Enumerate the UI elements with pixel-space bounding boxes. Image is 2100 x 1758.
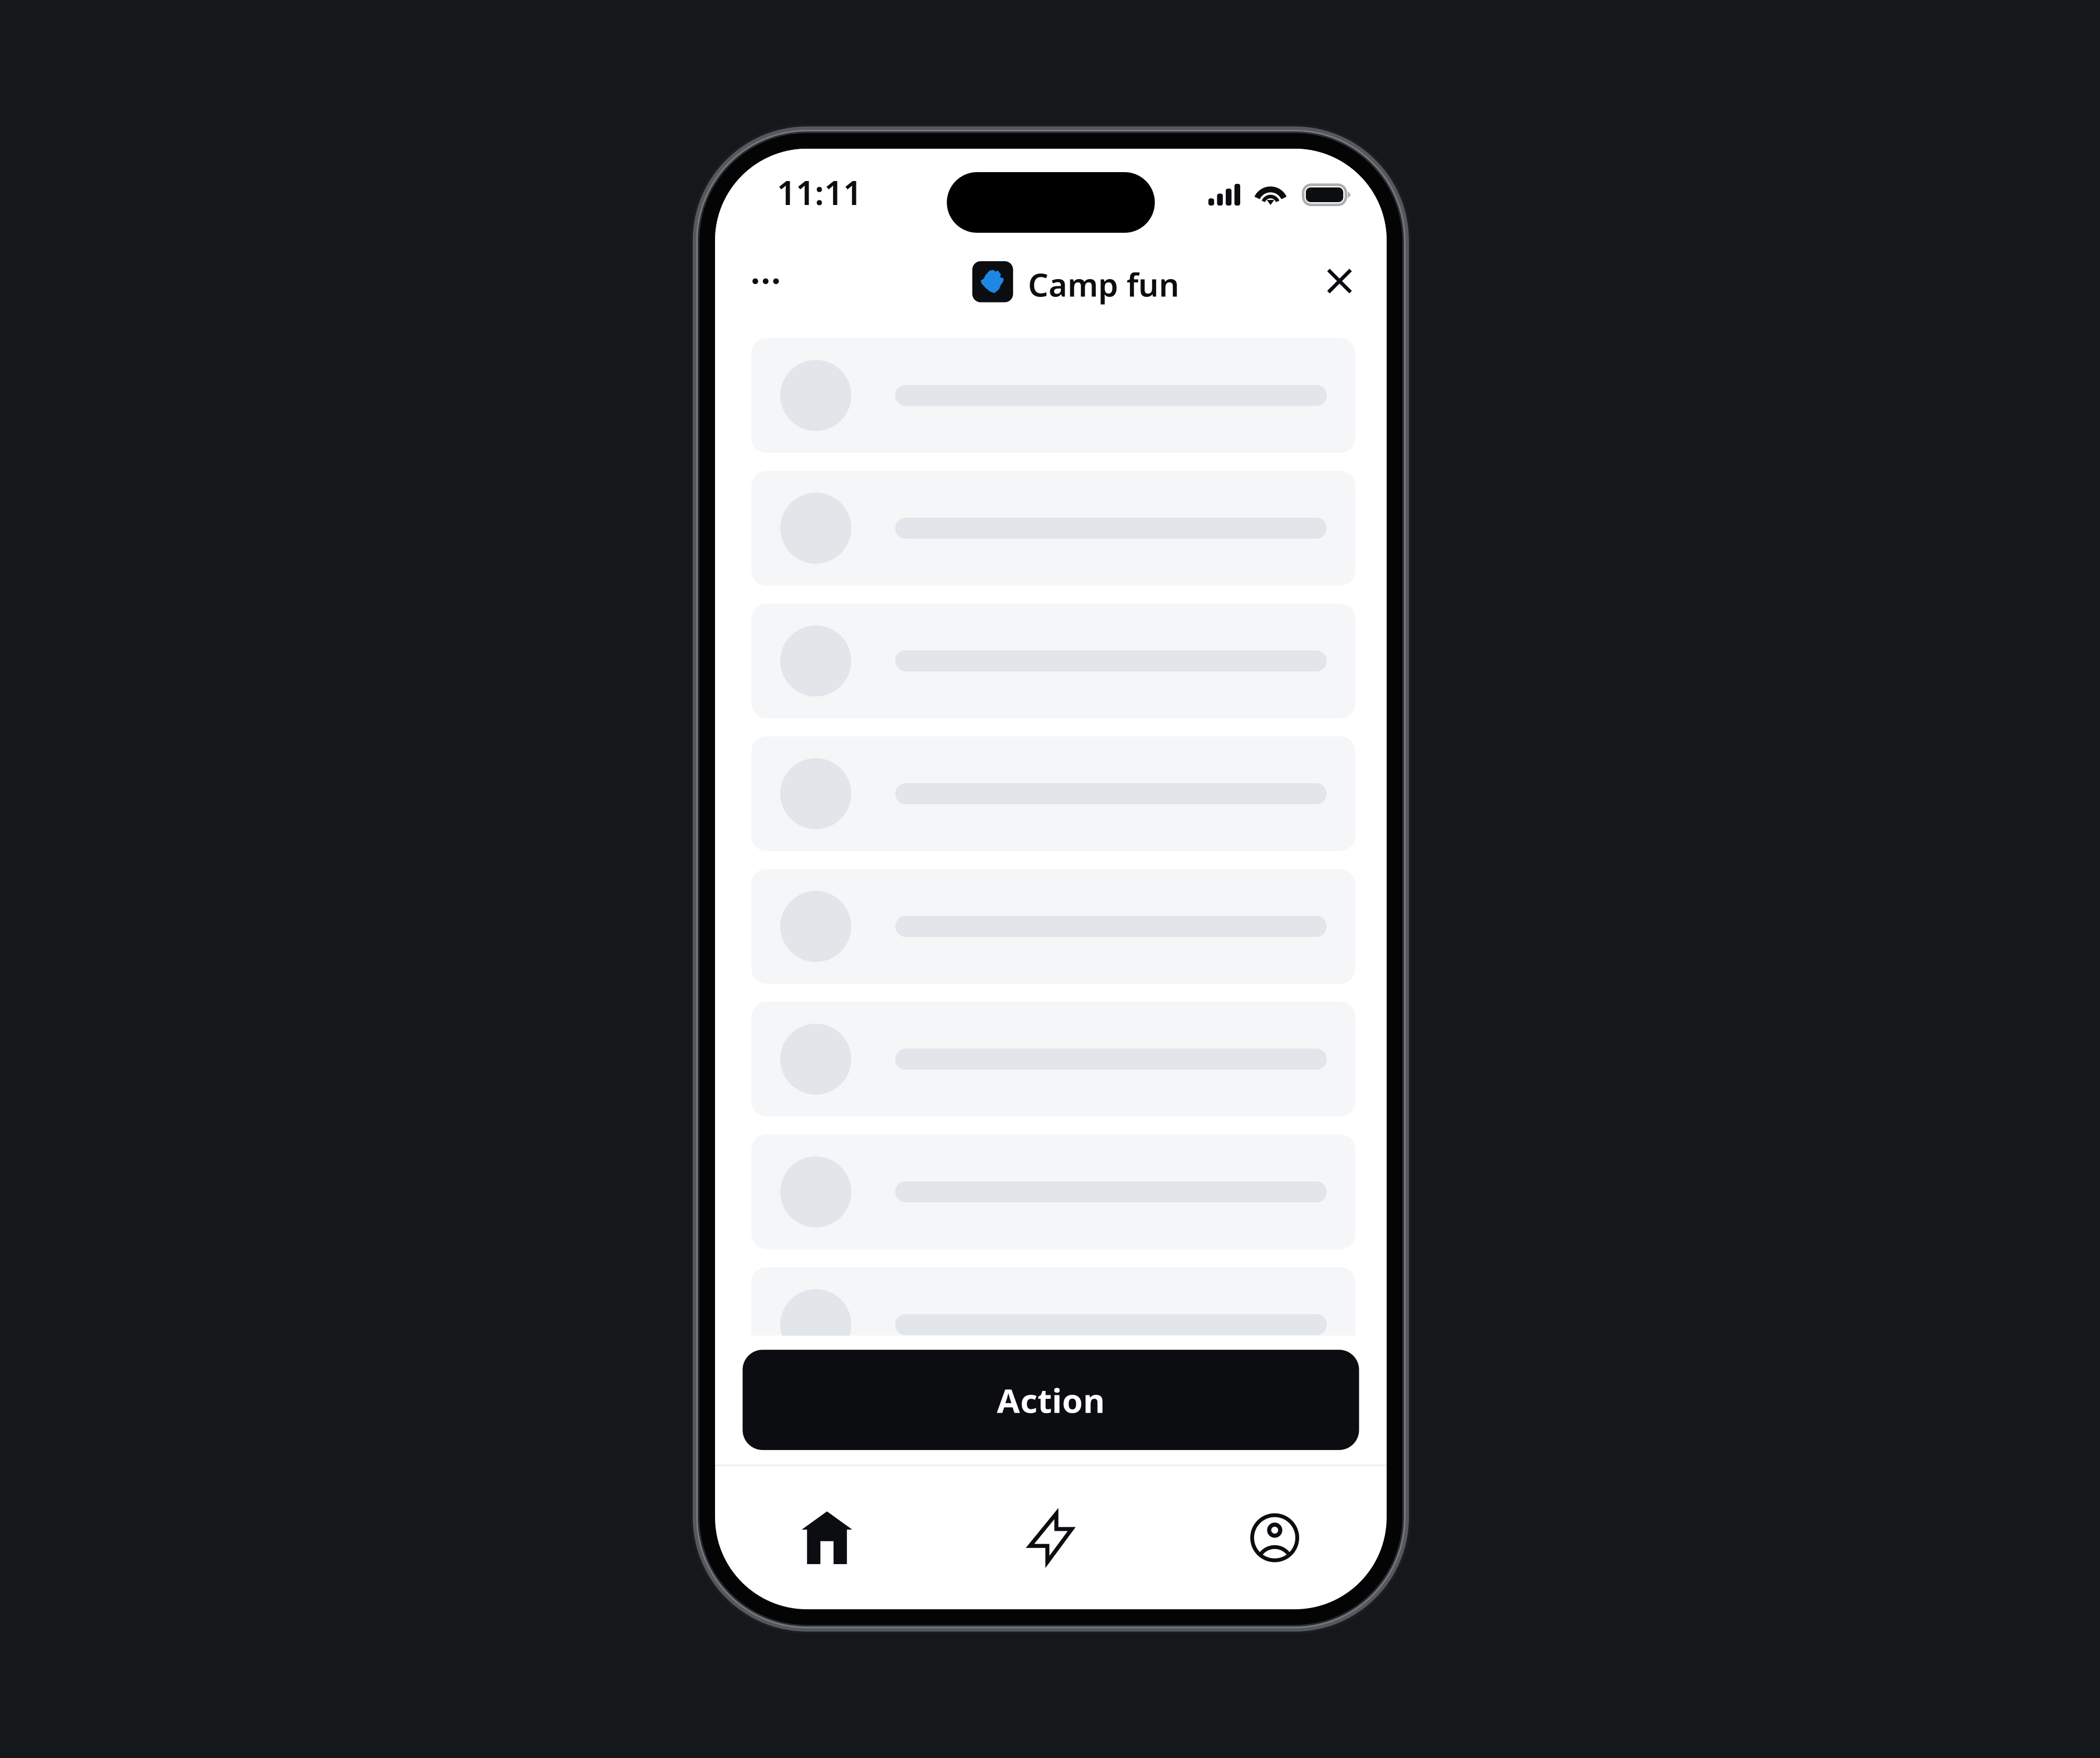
button[interactable]: Close [1304, 246, 1375, 316]
button[interactable]: Loading item [751, 736, 1355, 851]
button[interactable]: Loading item [751, 604, 1355, 718]
button[interactable]: Activity [939, 1490, 1163, 1585]
button[interactable]: More options [731, 246, 801, 316]
button[interactable]: Loading item [751, 1400, 1355, 1515]
staticText: 11:11 [777, 170, 862, 214]
button[interactable]: Action [743, 1350, 1359, 1450]
button[interactable]: Loading item [751, 1134, 1355, 1249]
button[interactable]: Loading item [751, 338, 1355, 453]
button[interactable]: Loading item [751, 471, 1355, 586]
button[interactable]: Loading item [751, 869, 1355, 984]
button[interactable]: Home [715, 1490, 939, 1585]
button[interactable]: Loading item [751, 1002, 1355, 1117]
button[interactable]: Loading item [751, 1267, 1355, 1382]
staticText: Action [997, 1378, 1105, 1422]
staticText: Camp fun [1028, 263, 1179, 305]
button[interactable]: Profile [1163, 1490, 1387, 1585]
